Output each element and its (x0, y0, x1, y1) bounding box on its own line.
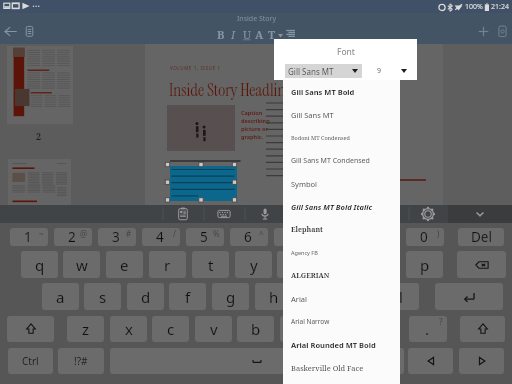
button[interactable]: n (280, 316, 317, 342)
button[interactable]: Keyboard layout (215, 205, 233, 223)
button[interactable]: d (127, 283, 164, 310)
staticText: 7 (288, 228, 296, 246)
button[interactable]: Document outline (22, 24, 37, 39)
button[interactable]: e (106, 251, 143, 278)
button[interactable]: v (195, 316, 232, 342)
button[interactable]: g (212, 283, 249, 310)
staticText: 4 (156, 228, 164, 246)
button[interactable]: 2 (54, 228, 92, 246)
staticText: ? (439, 316, 443, 327)
button[interactable]: left (408, 348, 453, 374)
button[interactable]: 7 (274, 228, 312, 246)
button[interactable]: Arial Narrow (283, 310, 400, 333)
button[interactable]: f (169, 283, 206, 310)
button[interactable]: I (227, 27, 240, 41)
staticText: e (120, 255, 129, 275)
staticText: Bodoni MT Condensed (291, 134, 350, 141)
button[interactable]: 6 (230, 228, 268, 246)
button[interactable]: q (21, 251, 58, 278)
button[interactable]: space (110, 348, 404, 374)
button[interactable]: Bodoni MT Condensed (283, 126, 400, 149)
button[interactable]: Del (458, 228, 504, 246)
button[interactable]: h (255, 283, 292, 310)
button[interactable]: l (382, 283, 419, 310)
button[interactable]: Settings (419, 205, 437, 223)
button[interactable]: Arial (283, 287, 400, 310)
button[interactable]: j (297, 283, 334, 310)
button[interactable]: Ctrl (8, 348, 53, 374)
button[interactable]: shift (7, 316, 54, 342)
button[interactable]: Clipboard (174, 205, 192, 223)
button[interactable]: . (409, 316, 447, 342)
button[interactable]: shift (460, 316, 505, 342)
button[interactable]: Gill Sans MT (285, 64, 362, 78)
button[interactable]: 1 (10, 228, 48, 246)
button[interactable]: enter (435, 283, 503, 310)
button[interactable]: w (63, 251, 100, 278)
button[interactable]: c (152, 316, 189, 342)
staticText: Font (337, 46, 355, 58)
staticText: ALGERIAN (291, 271, 330, 281)
button[interactable]: u (277, 251, 314, 278)
button[interactable]: ALGERIAN (283, 264, 400, 287)
button[interactable]: a (42, 283, 79, 310)
button[interactable]: U (240, 27, 253, 41)
button[interactable]: 4 (142, 228, 180, 246)
button[interactable]: i (320, 251, 357, 278)
button[interactable]: 5 (186, 228, 224, 246)
button[interactable]: Gill Sans MT Condensed (283, 149, 400, 172)
button[interactable]: Baskerville Old Face (283, 356, 400, 379)
button[interactable]: Hide keyboard (448, 205, 512, 223)
button[interactable]: Alignment (283, 26, 298, 41)
button[interactable]: Page setup (495, 24, 510, 39)
button[interactable]: p (406, 251, 443, 278)
staticText: Gill Sans MT (288, 66, 334, 77)
staticText: Agency FB (291, 249, 318, 256)
button[interactable]: !?# (58, 348, 104, 374)
button[interactable]: t (192, 251, 229, 278)
staticText: b (251, 319, 261, 339)
button[interactable]: x (110, 316, 147, 342)
button[interactable]: B (214, 27, 227, 41)
button[interactable]: b (237, 316, 274, 342)
staticText: 100% (465, 2, 483, 12)
button[interactable]: r (149, 251, 186, 278)
staticText: % (213, 228, 220, 239)
staticText: Baskerville Old Face (291, 363, 364, 373)
button[interactable]: 3 (98, 228, 136, 246)
staticText: 5 (200, 228, 208, 246)
button[interactable]: 8 (318, 228, 356, 246)
button[interactable]: 0 (406, 228, 444, 246)
button[interactable]: A (253, 27, 266, 41)
button[interactable]: bksp (457, 251, 506, 278)
button[interactable]: z (67, 316, 104, 342)
button[interactable]: right (459, 348, 504, 374)
button[interactable]: m (323, 316, 360, 342)
button[interactable]: 9 (370, 64, 410, 78)
staticText: p (420, 255, 430, 275)
button[interactable]: Text size (266, 27, 283, 41)
button[interactable] (7, 46, 73, 124)
button[interactable]: Gill Sans MT (283, 103, 400, 126)
button[interactable]: Symbol (283, 172, 400, 195)
button[interactable]: Elephant (283, 218, 400, 241)
button[interactable]: Voice input (256, 205, 274, 223)
button[interactable]: Agency FB (283, 241, 400, 264)
button[interactable]: Back (2, 23, 19, 40)
button[interactable]: Gill Sans MT Bold (283, 80, 400, 103)
button[interactable]: Gill Sans MT Bold Italic (283, 195, 400, 218)
button[interactable]: s (84, 283, 121, 310)
button[interactable]: y (235, 251, 272, 278)
staticText: @ (80, 228, 88, 239)
staticText: Gill Sans MT Bold Italic (291, 202, 373, 212)
button[interactable]: Arial Rounded MT Bold (283, 333, 400, 356)
button[interactable]: Add (475, 23, 492, 40)
button[interactable] (8, 159, 71, 205)
